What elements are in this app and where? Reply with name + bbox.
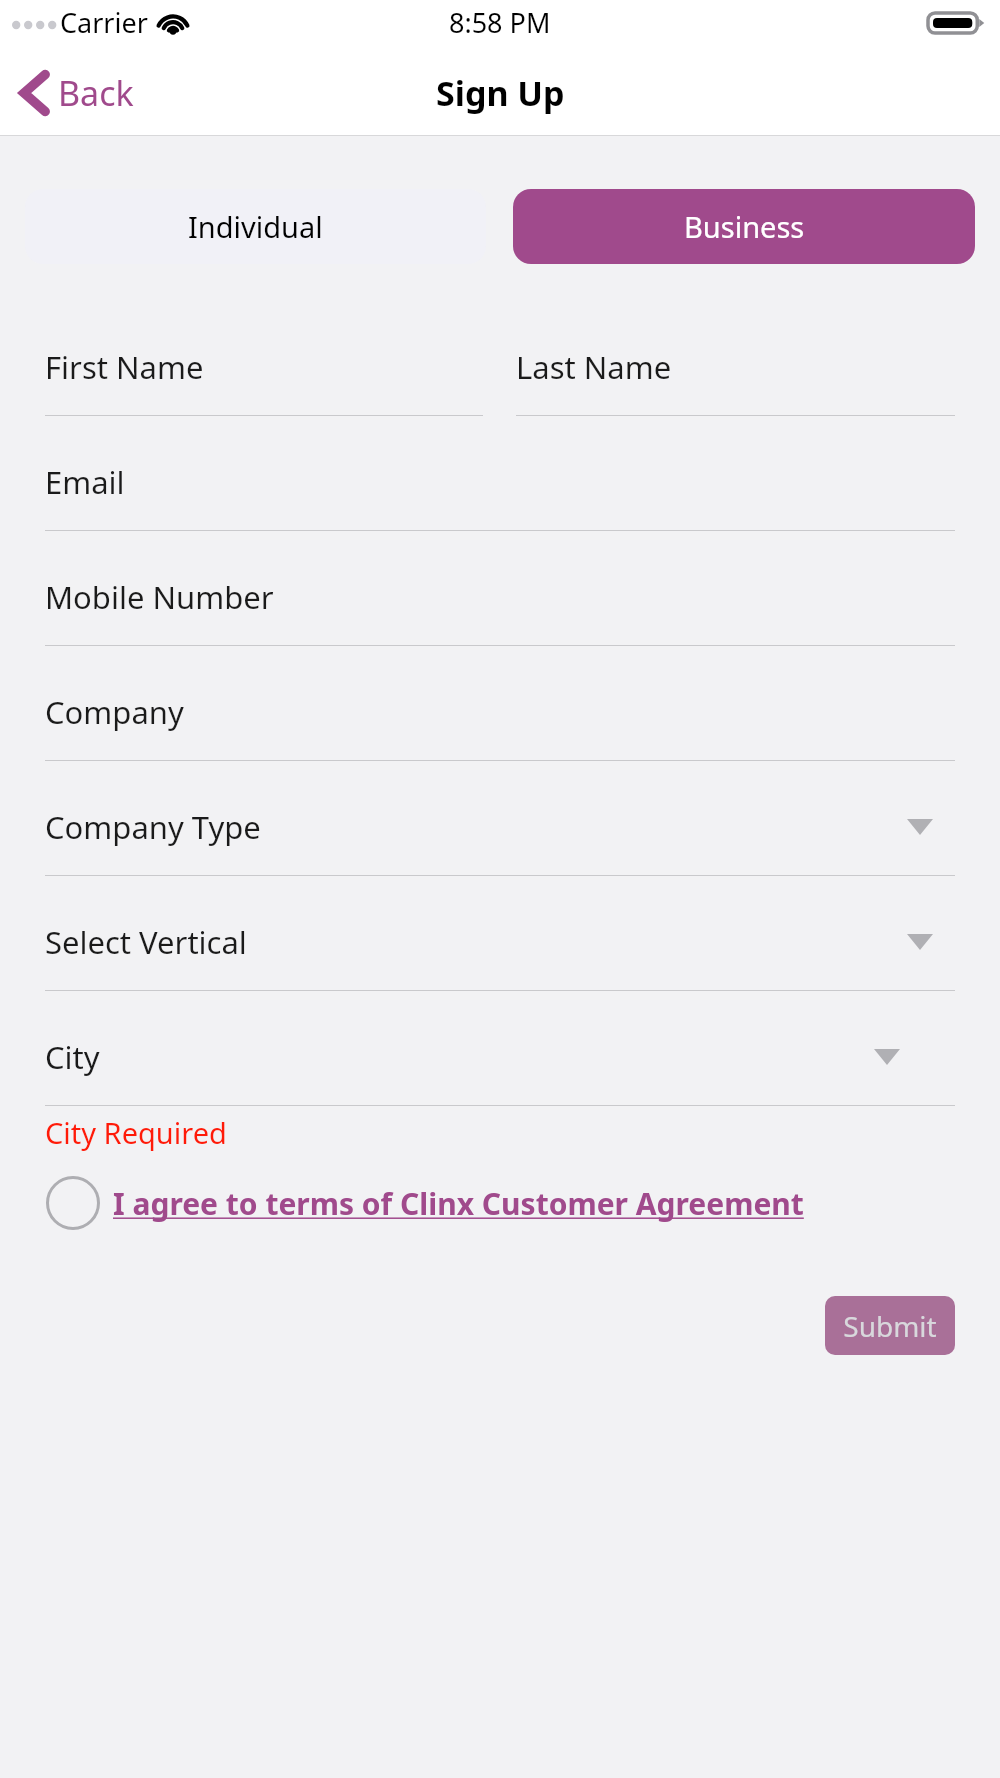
button[interactable]: Business (513, 189, 975, 264)
staticText: Last Name (516, 346, 672, 388)
button[interactable]: Company (45, 691, 955, 761)
staticText: Submit (843, 1307, 937, 1345)
button[interactable]: Select Vertical (45, 921, 955, 991)
button[interactable]: I agree checkbox (45, 1175, 955, 1231)
staticText: Email (45, 461, 125, 503)
staticText: Company (45, 691, 184, 733)
button[interactable]: Email (45, 461, 955, 531)
staticText: Business (684, 207, 805, 246)
staticText: Back (58, 70, 134, 116)
staticText: City Required (45, 1113, 227, 1152)
button[interactable]: City (45, 1036, 955, 1106)
button[interactable]: Mobile Number (45, 576, 955, 646)
button[interactable]: Last Name (516, 346, 955, 416)
staticText: Company Type (45, 806, 261, 848)
staticText: Sign Up (436, 70, 565, 116)
button[interactable]: Individual (25, 189, 486, 264)
staticText: Individual (188, 207, 323, 246)
button[interactable]: Back (0, 64, 150, 122)
staticText: Select Vertical (45, 921, 247, 963)
other: Open City list (874, 1049, 900, 1065)
staticText: City (45, 1036, 100, 1078)
other: Open Select Vertical list (907, 934, 933, 950)
button[interactable]: First Name (45, 346, 483, 416)
staticText: I agree to terms of Clinx Customer Agree… (113, 1183, 804, 1224)
button[interactable]: Company Type (45, 806, 955, 876)
staticText: Mobile Number (45, 576, 274, 618)
other: Open Company Type list (907, 819, 933, 835)
staticText: First Name (45, 346, 204, 388)
other: I agree checkbox (45, 1175, 101, 1231)
staticText: 8:58 PM (449, 4, 551, 41)
staticText: Carrier (60, 4, 148, 41)
button[interactable]: Submit (825, 1296, 955, 1355)
